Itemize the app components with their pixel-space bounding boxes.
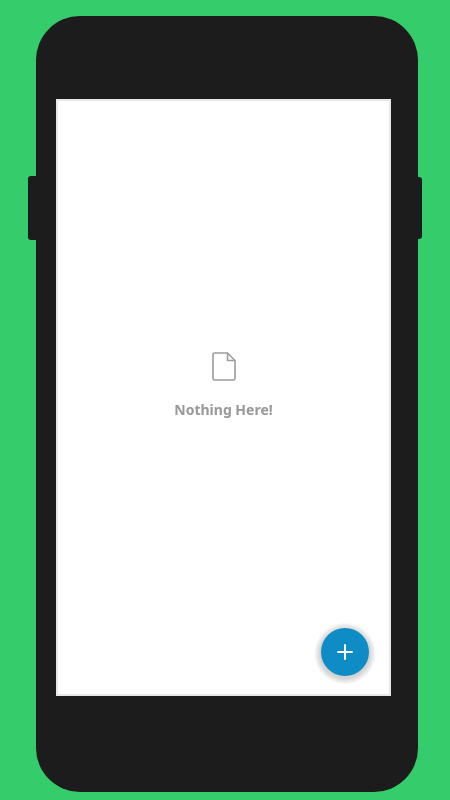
staticText: Nothing Here! [174, 400, 273, 419]
button[interactable]: Add [321, 628, 369, 676]
